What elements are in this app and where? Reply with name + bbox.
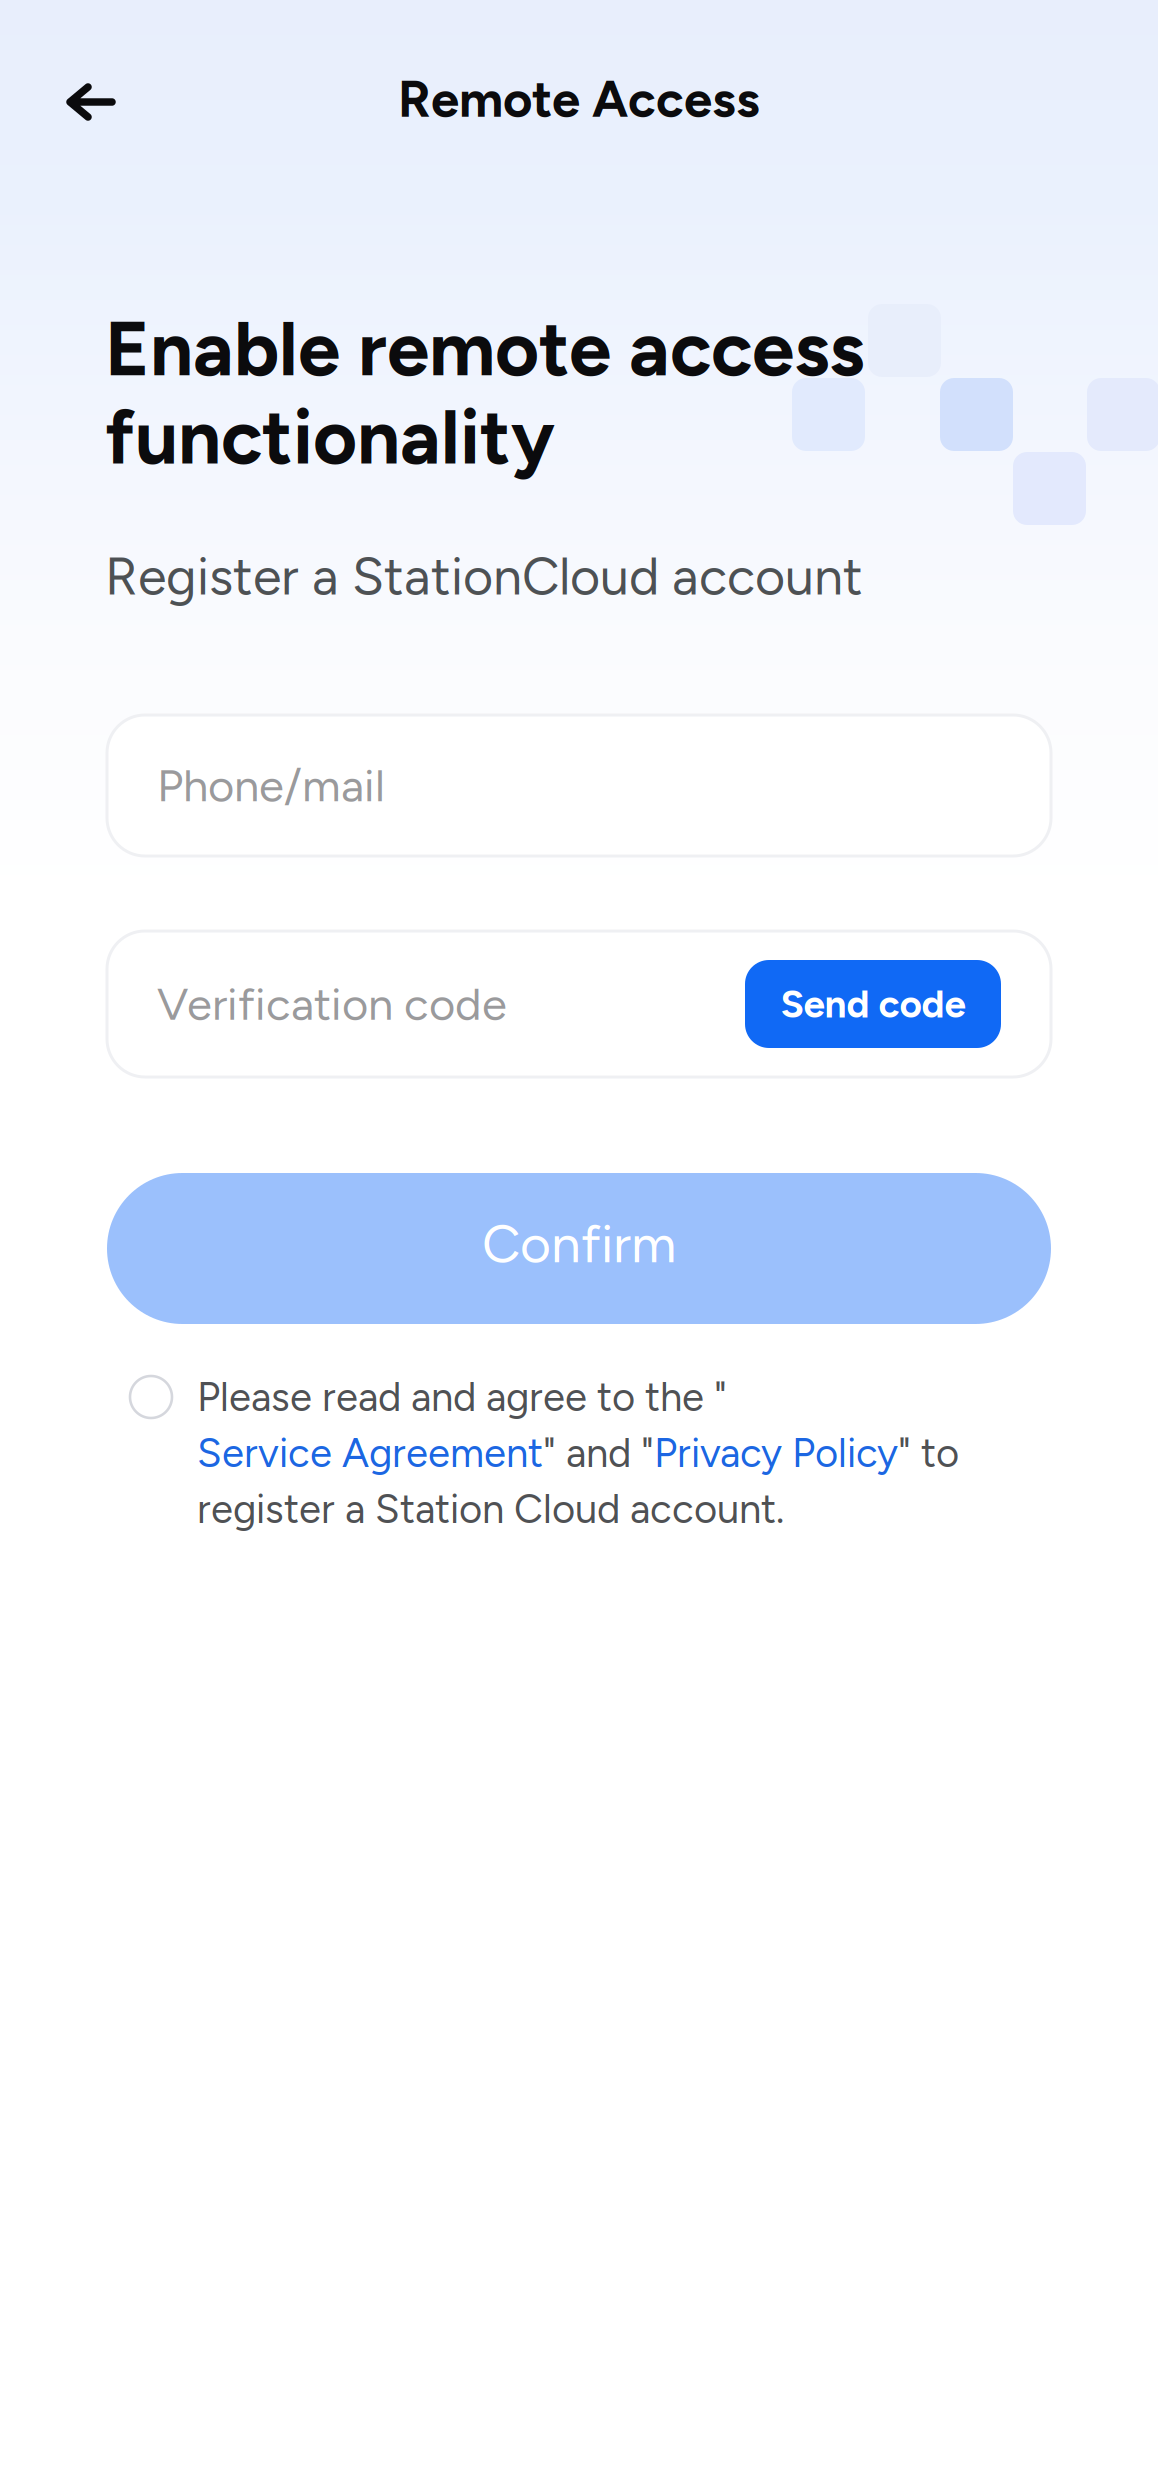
staticText: Privacy Policy [654, 1429, 898, 1477]
staticText: Verification code [157, 977, 507, 1031]
staticText: " to [898, 1429, 959, 1477]
button[interactable]: Agree to terms [112, 1368, 190, 1426]
staticText: Enable remote access functionality [105, 303, 864, 482]
staticText: register a Station Cloud account. [197, 1485, 784, 1533]
staticText: Service Agreement [197, 1429, 543, 1477]
staticText: Phone/mail [157, 758, 385, 813]
button[interactable]: Back [35, 54, 147, 150]
button[interactable]: Privacy Policy [654, 1429, 898, 1477]
staticText: Remote Access [398, 69, 760, 129]
button[interactable]: Service Agreement [197, 1429, 543, 1477]
staticText: Register a StationCloud account [105, 545, 863, 607]
button[interactable]: Confirm [107, 1173, 1051, 1324]
staticText: Confirm [482, 1211, 676, 1275]
staticText: Send code [780, 981, 965, 1027]
staticText: Please read and agree to the " [197, 1373, 727, 1421]
staticText: " and " [543, 1429, 654, 1477]
button[interactable]: Send code [745, 960, 1001, 1048]
